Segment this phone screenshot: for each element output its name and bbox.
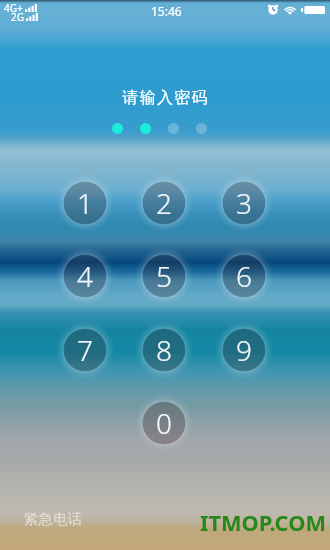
button[interactable]: 4 (56, 247, 114, 305)
staticText: 7 (77, 331, 93, 369)
other: Alarm set (268, 5, 278, 15)
button[interactable]: 5 (135, 247, 193, 305)
staticText: 紧急电话 (24, 510, 82, 528)
button[interactable]: 紧急电话 (14, 504, 92, 534)
button[interactable]: 2 (135, 174, 193, 232)
button[interactable]: 9 (215, 321, 273, 379)
button[interactable]: 0 (135, 394, 193, 452)
staticText: 1 (77, 184, 93, 222)
staticText: 0 (156, 404, 172, 442)
staticText: 6 (236, 257, 252, 295)
staticText: ITMOP.COM (200, 508, 326, 538)
staticText: 请输入密码 (122, 88, 208, 108)
staticText: 15:46 (151, 3, 182, 19)
staticText: 3 (236, 184, 252, 222)
staticText: 2 (156, 184, 172, 222)
other: Battery (301, 6, 325, 14)
staticText: 5 (156, 257, 172, 295)
staticText: 8 (156, 331, 172, 369)
button[interactable]: 7 (56, 321, 114, 379)
staticText: 4 (77, 257, 93, 295)
other: Wi-Fi (284, 5, 296, 15)
staticText: 4G+ (4, 1, 23, 15)
button[interactable]: 6 (215, 247, 273, 305)
staticText: 2G (11, 10, 24, 24)
button[interactable]: 1 (56, 174, 114, 232)
staticText: 9 (236, 331, 252, 369)
button[interactable]: 3 (215, 174, 273, 232)
button[interactable]: 8 (135, 321, 193, 379)
